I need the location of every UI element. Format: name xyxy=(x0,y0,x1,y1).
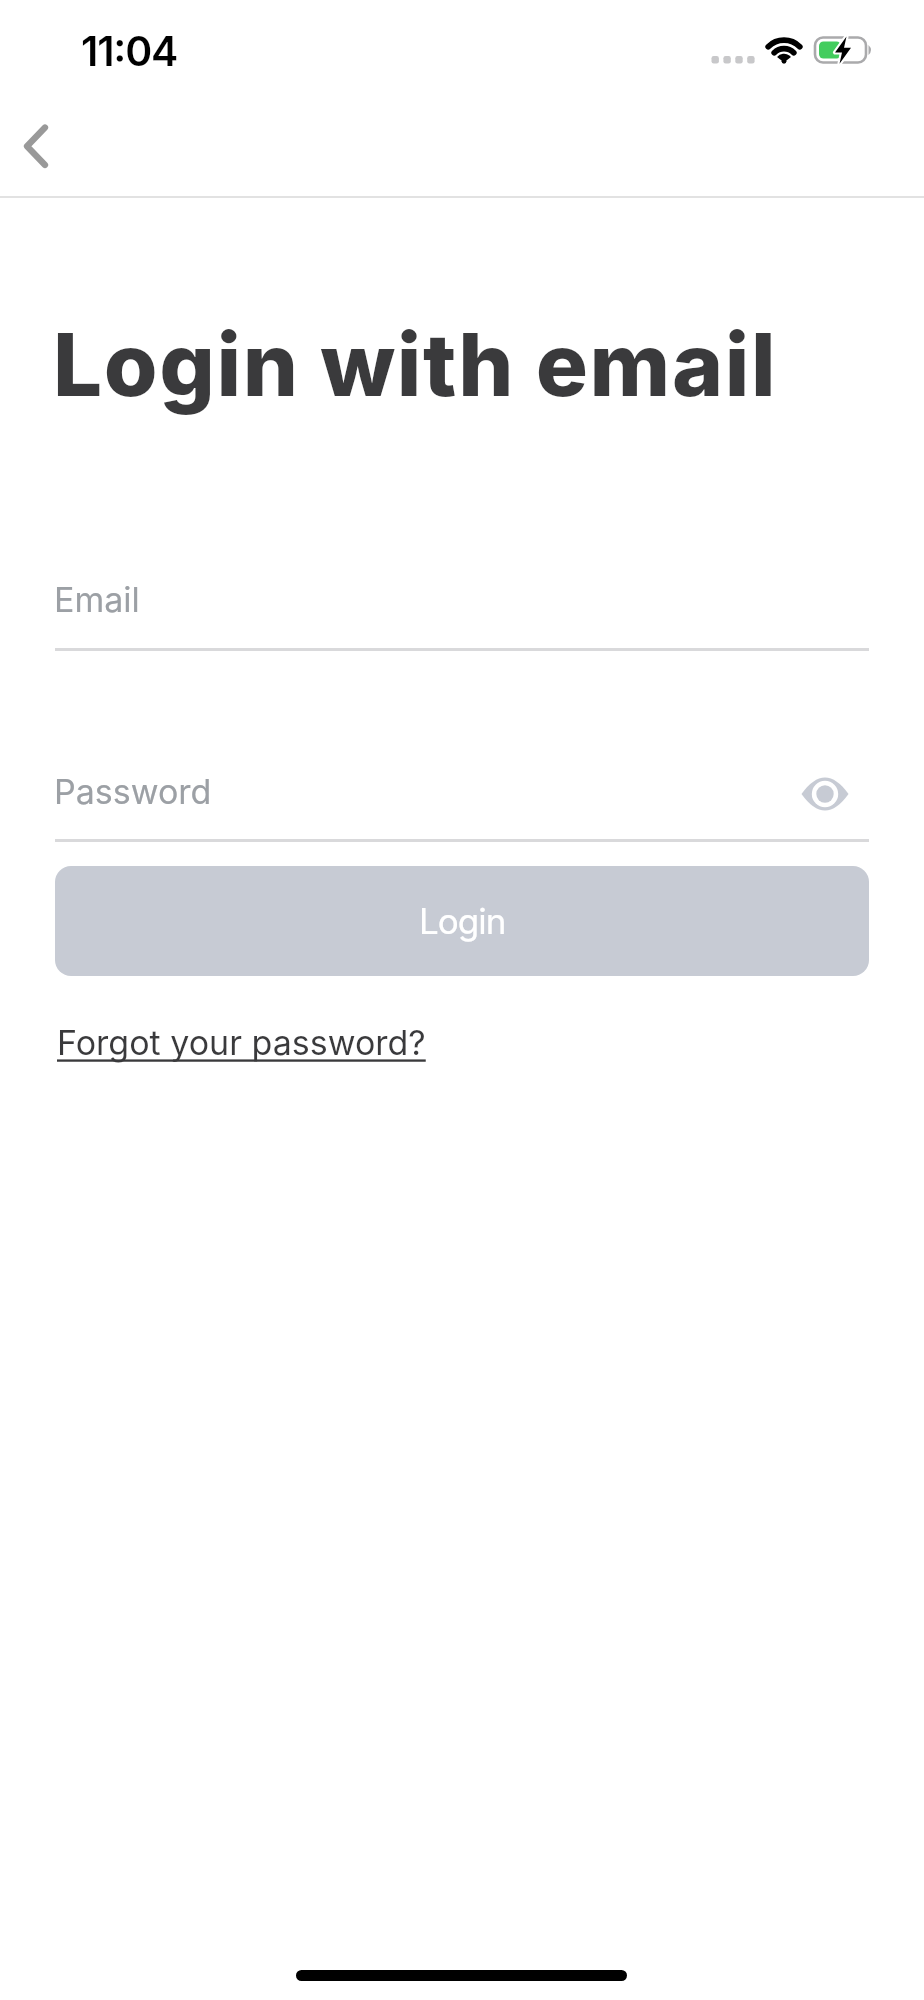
staticText: Forgot your password? xyxy=(57,1022,426,1063)
button[interactable] xyxy=(6,116,66,176)
button[interactable] xyxy=(55,757,869,842)
button[interactable]: Forgot your password? xyxy=(57,1022,426,1063)
staticText: Login xyxy=(419,900,506,942)
button[interactable] xyxy=(794,764,856,824)
staticText: 11:04 xyxy=(81,26,178,76)
staticText: Login with email xyxy=(53,312,778,417)
staticText: Password xyxy=(54,771,212,812)
staticText: Email xyxy=(54,579,140,620)
button[interactable] xyxy=(55,565,869,651)
button[interactable]: Login xyxy=(55,866,869,976)
